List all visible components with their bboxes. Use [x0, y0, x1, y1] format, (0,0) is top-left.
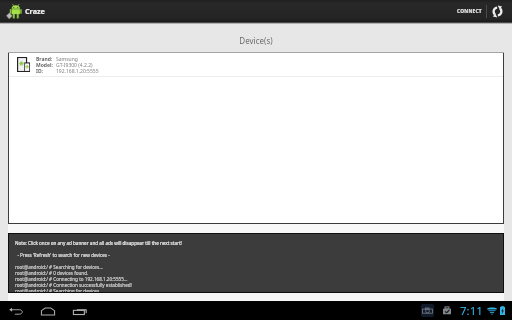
button[interactable]: Home	[38, 301, 57, 320]
staticText: root@android:/ # Searching for devices..…	[15, 288, 103, 292]
staticText: ID:	[36, 68, 56, 74]
staticText: root@android:/ # Searching for devices..…	[15, 264, 103, 270]
staticText: 7:11	[460, 303, 483, 319]
staticText: Craze	[25, 6, 45, 16]
staticText: CONNECT	[457, 8, 482, 15]
staticText: root@android:/ # Connection successfully…	[15, 282, 132, 288]
staticText: root@android:/ # 0 devices found.	[15, 270, 89, 276]
staticText: Samsung	[56, 56, 78, 62]
button[interactable]: Screenshot	[421, 304, 434, 317]
staticText: Device(s)	[239, 35, 273, 46]
staticText: Brand:	[36, 56, 56, 62]
button[interactable]: Brand:	[9, 53, 503, 76]
button[interactable]: Back	[6, 301, 25, 320]
button[interactable]: CONNECT	[453, 0, 486, 22]
staticText: GT-I9300 (4.2.2)	[56, 62, 93, 68]
staticText: 192.168.1.20:5555	[56, 68, 99, 74]
button[interactable]: Recents	[70, 301, 89, 320]
button[interactable]: Refresh	[487, 0, 508, 22]
staticText: root@android:/ # Connecting to 192.168.1…	[15, 276, 128, 282]
staticText: Note: Click once on any ad banner and al…	[15, 240, 182, 246]
staticText: Model:	[36, 62, 56, 68]
staticText: - Press 'Refresh' to search for new devi…	[15, 252, 110, 258]
